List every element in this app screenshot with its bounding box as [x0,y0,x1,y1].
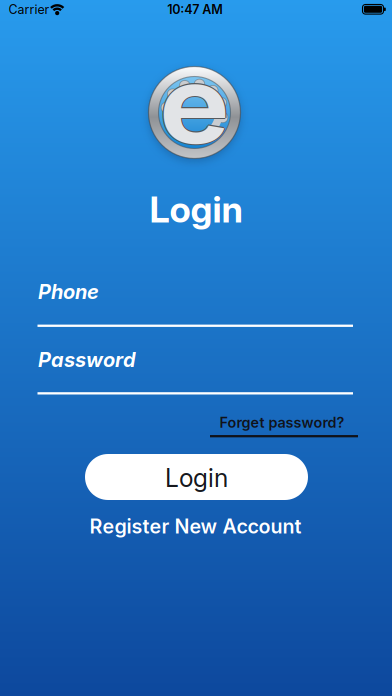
button[interactable]: Forget password? [208,412,358,440]
staticText: Password [38,348,136,371]
staticText: Phone [38,280,99,303]
staticText: e [160,34,231,174]
staticText: Register New Account [89,515,301,538]
staticText: e [159,34,230,174]
staticText: Login [149,188,242,231]
button[interactable]: Password [37,348,353,396]
staticText: e [159,33,230,173]
staticText: e [158,34,229,174]
staticText: Login [165,463,228,492]
button[interactable]: Login [85,454,308,500]
button[interactable]: Register New Account [89,515,301,538]
staticText: Forget password? [219,414,344,431]
staticText: Carrier [8,2,49,17]
staticText: 10:47 AM [167,2,223,17]
button[interactable]: Phone [37,280,353,328]
staticText: e [159,36,230,176]
